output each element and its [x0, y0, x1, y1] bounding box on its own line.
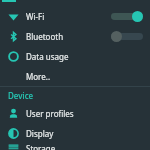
- button[interactable]: Data usage: [0, 46, 150, 66]
- button[interactable]: On: [111, 11, 143, 22]
- staticText: More..: [26, 71, 51, 82]
- button[interactable]: Off: [111, 31, 143, 42]
- button[interactable]: More..: [0, 66, 150, 86]
- staticText: Display: [26, 128, 54, 139]
- staticText: Data usage: [26, 51, 69, 62]
- button[interactable]: Storage: [0, 143, 150, 150]
- button[interactable]: User profiles: [0, 103, 150, 123]
- staticText: Wi-Fi: [26, 11, 45, 22]
- staticText: Storage: [26, 143, 56, 150]
- button[interactable]: Display: [0, 123, 150, 143]
- button[interactable]: Bluetooth: [0, 26, 150, 46]
- staticText: Device: [8, 90, 34, 101]
- staticText: User profiles: [26, 108, 74, 119]
- staticText: Bluetooth: [26, 31, 64, 42]
- button[interactable]: Wi-Fi: [0, 6, 150, 26]
